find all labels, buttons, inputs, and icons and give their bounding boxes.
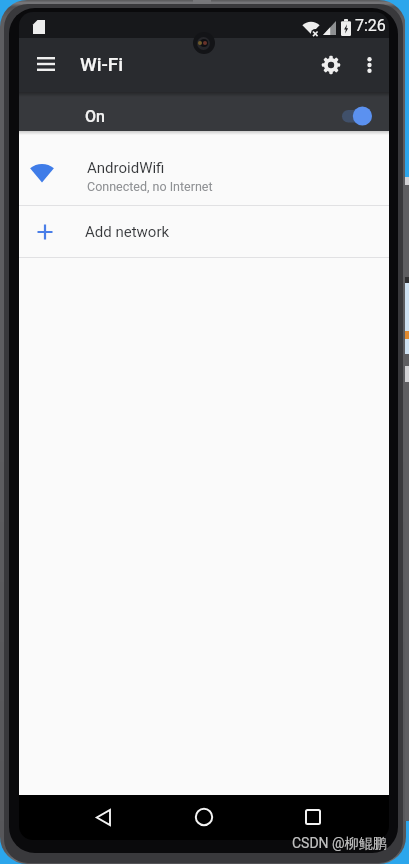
staticText: 7:26	[355, 16, 386, 35]
button[interactable]: On	[19, 92, 389, 131]
staticText: Wi-Fi	[80, 53, 124, 75]
button[interactable]	[293, 797, 333, 837]
staticText: On	[85, 107, 105, 126]
button[interactable]	[29, 47, 63, 81]
button[interactable]	[184, 797, 224, 837]
button[interactable]	[83, 797, 123, 837]
staticText: Add network	[85, 223, 170, 241]
button[interactable]: Add network	[19, 206, 389, 257]
staticText: AndroidWifi	[87, 159, 165, 177]
button[interactable]	[352, 48, 386, 82]
staticText: CSDN @柳鲲鹏	[292, 835, 387, 853]
staticText: Connected, no Internet	[87, 179, 213, 194]
button[interactable]: AndroidWifi	[19, 135, 389, 205]
button[interactable]	[313, 47, 349, 83]
